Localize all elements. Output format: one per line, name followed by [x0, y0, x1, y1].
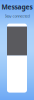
staticText: Messages — [1, 2, 32, 11]
staticText: Stay connected — [4, 13, 29, 19]
